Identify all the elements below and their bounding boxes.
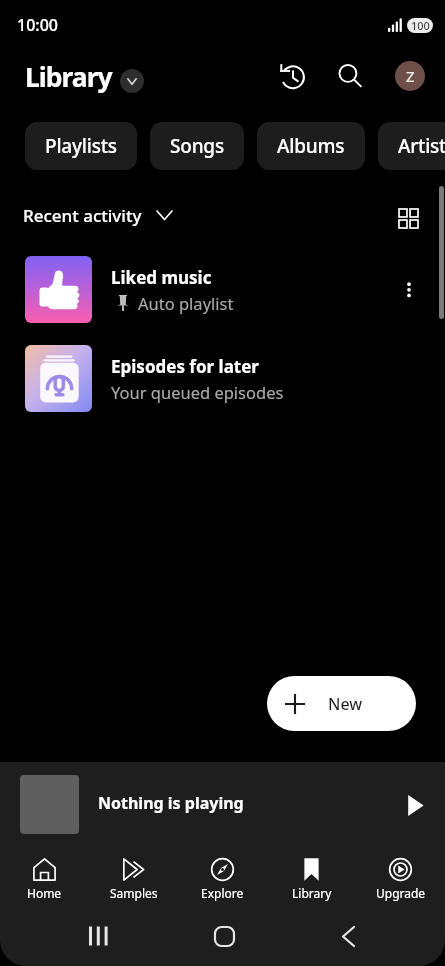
staticText: Library: [25, 59, 112, 95]
staticText: Upgrade: [376, 885, 426, 901]
button[interactable]: Liked music: [0, 245, 445, 334]
button[interactable]: Library: [267, 838, 356, 906]
button[interactable]: Expand library: [120, 69, 144, 93]
staticText: Home: [27, 885, 62, 901]
staticText: Recent activity: [23, 204, 142, 226]
button[interactable]: Home: [194, 916, 254, 956]
staticText: Artists: [398, 133, 445, 159]
button[interactable]: Back: [318, 916, 378, 956]
button[interactable]: Nothing is playing: [0, 762, 445, 838]
button[interactable]: Artists: [378, 122, 445, 170]
staticText: Auto playlist: [138, 292, 234, 314]
button[interactable]: Recents: [69, 916, 129, 956]
button[interactable]: Home: [0, 838, 89, 906]
button[interactable]: Playlists: [25, 122, 137, 170]
button[interactable]: Account: [395, 61, 425, 91]
staticText: Liked music: [111, 266, 212, 289]
staticText: Library: [292, 885, 332, 901]
button[interactable]: Samples: [89, 838, 178, 906]
staticText: Your queued episodes: [111, 381, 284, 403]
staticText: Episodes for later: [111, 355, 259, 378]
button[interactable]: Grid view: [388, 198, 428, 238]
button[interactable]: New: [267, 676, 416, 731]
staticText: Playlists: [45, 133, 117, 159]
staticText: Samples: [110, 885, 158, 901]
staticText: Albums: [277, 133, 345, 159]
staticText: Explore: [201, 885, 244, 901]
button[interactable]: Albums: [257, 122, 365, 170]
button[interactable]: Upgrade: [356, 838, 445, 906]
button[interactable]: Songs: [150, 122, 244, 170]
button[interactable]: Play: [394, 784, 436, 826]
staticText: 100: [411, 18, 430, 33]
staticText: Z: [406, 66, 415, 86]
staticText: New: [328, 693, 363, 715]
staticText: Nothing is playing: [98, 792, 244, 814]
button[interactable]: History: [269, 53, 314, 98]
staticText: 10:00: [17, 14, 58, 36]
staticText: Songs: [170, 133, 224, 159]
button[interactable]: Explore: [178, 838, 267, 906]
button[interactable]: Recent activity: [23, 204, 173, 226]
button[interactable]: Search: [327, 53, 372, 98]
button[interactable]: More options: [387, 268, 431, 312]
button[interactable]: Episodes for later: [0, 334, 445, 423]
